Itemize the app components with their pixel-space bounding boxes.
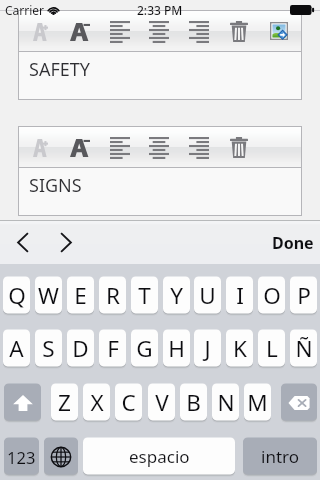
staticText: O <box>263 280 281 311</box>
staticText: SAFETY <box>29 57 90 82</box>
staticText: Ñ <box>295 333 313 364</box>
button[interactable]: Increase text size <box>20 10 60 51</box>
button[interactable]: 123 <box>4 438 39 475</box>
staticText: I <box>236 280 244 311</box>
staticText: U <box>199 280 216 311</box>
button[interactable]: P <box>290 277 317 314</box>
staticText: 2:33 PM <box>137 2 183 18</box>
staticText: A <box>9 333 24 364</box>
button[interactable]: G <box>131 330 158 367</box>
button[interactable]: Delete <box>219 126 259 167</box>
button[interactable]: X <box>83 384 110 421</box>
staticText: R <box>106 280 120 311</box>
button[interactable]: B <box>180 384 207 421</box>
button[interactable]: E <box>67 277 94 314</box>
button[interactable]: Align right <box>179 126 219 167</box>
staticText: J <box>204 333 211 364</box>
staticText: Carrier <box>5 2 45 18</box>
button[interactable]: T <box>131 277 158 314</box>
button[interactable]: Shift <box>4 384 41 421</box>
button[interactable]: Y <box>163 277 190 314</box>
button[interactable]: V <box>148 384 175 421</box>
staticText: E <box>74 280 87 311</box>
staticText: Z <box>58 387 71 418</box>
button[interactable]: Align left <box>100 126 140 167</box>
button[interactable]: N <box>212 384 239 421</box>
button[interactable]: Decrease text size <box>60 126 100 167</box>
button[interactable]: C <box>115 384 142 421</box>
button[interactable]: Z <box>51 384 78 421</box>
button[interactable]: Next field <box>44 221 88 264</box>
button[interactable]: Q <box>3 277 30 314</box>
staticText: Y <box>170 280 183 311</box>
button[interactable]: S <box>35 330 62 367</box>
staticText: SIGNS <box>29 173 82 198</box>
button[interactable]: U <box>194 277 221 314</box>
staticText: N <box>217 387 235 418</box>
staticText: T <box>138 280 151 311</box>
staticText: L <box>266 333 278 364</box>
button[interactable]: Align center <box>139 10 179 51</box>
button[interactable]: H <box>163 330 190 367</box>
staticText: M <box>247 387 268 418</box>
staticText: Q <box>8 280 26 311</box>
button[interactable]: Align center <box>139 126 179 167</box>
staticText: K <box>233 333 247 364</box>
button[interactable]: Delete <box>219 10 259 51</box>
button[interactable]: Insert image <box>259 10 299 51</box>
staticText: C <box>121 387 136 418</box>
staticText: P <box>297 280 311 311</box>
staticText: G <box>136 333 153 364</box>
staticText: F <box>107 333 119 364</box>
button[interactable]: F <box>99 330 126 367</box>
button[interactable]: M <box>244 384 271 421</box>
staticText: espacio <box>129 445 190 468</box>
button[interactable]: K <box>226 330 253 367</box>
button[interactable]: O <box>258 277 285 314</box>
button[interactable]: Done <box>258 221 320 264</box>
button[interactable]: Previous field <box>0 221 43 264</box>
button[interactable]: Ñ <box>290 330 317 367</box>
button[interactable]: intro <box>243 438 317 475</box>
staticText: S <box>42 333 55 364</box>
button[interactable]: J <box>194 330 221 367</box>
button[interactable]: Backspace <box>281 384 317 421</box>
staticText: W <box>38 280 59 311</box>
button[interactable]: Align right <box>179 10 219 51</box>
button[interactable]: Next keyboard <box>44 438 78 475</box>
staticText: V <box>155 387 169 418</box>
button[interactable]: I <box>226 277 253 314</box>
button[interactable]: Decrease text size <box>60 10 100 51</box>
staticText: Done <box>272 232 314 254</box>
button[interactable]: Align left <box>100 10 140 51</box>
staticText: B <box>186 387 201 418</box>
button[interactable]: R <box>99 277 126 314</box>
staticText: H <box>168 333 185 364</box>
staticText: 123 <box>7 446 36 468</box>
staticText: X <box>90 387 104 418</box>
staticText: D <box>72 333 89 364</box>
button[interactable]: W <box>35 277 62 314</box>
button[interactable]: D <box>67 330 94 367</box>
staticText: intro <box>261 445 299 468</box>
button[interactable]: Increase text size <box>20 126 60 167</box>
button[interactable]: espacio <box>83 438 235 475</box>
button[interactable]: A <box>3 330 30 367</box>
button[interactable]: L <box>258 330 285 367</box>
